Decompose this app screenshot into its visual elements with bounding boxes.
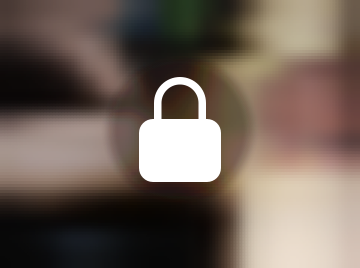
- button[interactable]: Unlock hidden photo: [0, 0, 360, 268]
